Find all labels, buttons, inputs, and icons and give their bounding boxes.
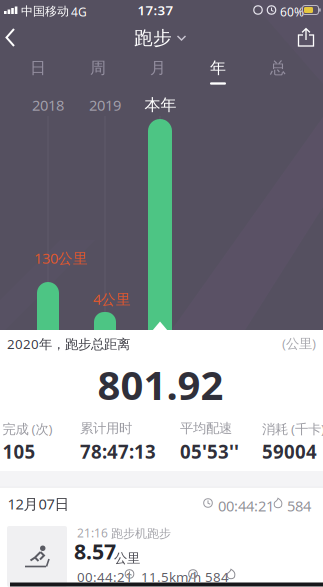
staticText: 年 [210, 58, 226, 78]
staticText: 公里 [114, 550, 140, 566]
button[interactable]: 月 [130, 54, 186, 82]
staticText: 05'53'' [180, 439, 239, 464]
staticText: 2020年，跑步总距离 [7, 335, 130, 353]
button[interactable]: 年 [190, 54, 246, 82]
staticText: 17:37 [137, 1, 173, 19]
button[interactable]: Back [0, 20, 36, 56]
staticText: 105 [2, 439, 35, 464]
staticText: 本年 [144, 95, 176, 115]
staticText: 801.92 [97, 358, 223, 411]
button[interactable]: 21:16 跑步机跑步 [0, 526, 323, 587]
staticText: 78:47:13 [80, 439, 156, 464]
staticText: 21:16 跑步机跑步 [77, 525, 171, 541]
staticText: (公里) [282, 334, 316, 352]
staticText: 平均配速 [180, 420, 232, 436]
staticText: 日 [30, 58, 46, 78]
staticText: 59004 [262, 439, 317, 464]
button[interactable]: 周 [70, 54, 126, 82]
button[interactable]: Share [297, 28, 314, 47]
staticText: 00:44:21 [77, 568, 133, 586]
staticText: 00:44:21 [218, 496, 274, 515]
staticText: 跑步 [134, 26, 172, 49]
staticText: 60% [280, 4, 304, 20]
staticText: 584 [287, 496, 311, 515]
staticText: 累计用时 [80, 420, 132, 436]
staticText: 12月07日 [7, 494, 69, 513]
staticText: 总 [270, 58, 286, 78]
staticText: 130公里 [34, 248, 88, 268]
staticText: 584 [205, 568, 229, 586]
button[interactable]: 跑步 [134, 26, 186, 49]
staticText: 8.57 [74, 537, 116, 565]
staticText: 周 [90, 58, 106, 78]
staticText: 消耗 (千卡) [262, 420, 323, 438]
staticText: 11.5km/h [141, 568, 201, 586]
button[interactable]: 日 [10, 54, 66, 82]
staticText: 月 [150, 58, 166, 78]
staticText: 完成 (次) [2, 420, 52, 438]
button[interactable]: 总 [250, 54, 306, 82]
staticText: 4G [71, 4, 87, 20]
staticText: 2018 [32, 95, 64, 115]
staticText: 中国移动 [21, 4, 69, 19]
staticText: 4公里 [93, 289, 131, 309]
staticText: 2019 [89, 95, 121, 115]
